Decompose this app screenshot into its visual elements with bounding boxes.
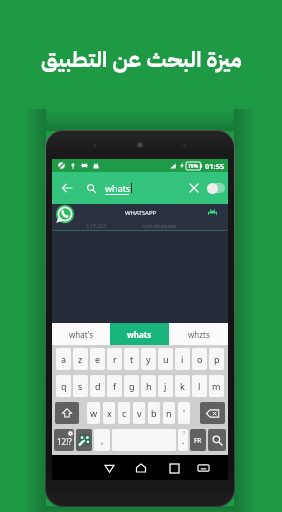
staticText: q <box>61 380 67 392</box>
staticText: 01:55 <box>205 161 225 171</box>
staticText: 79% <box>188 163 199 170</box>
staticText: . <box>182 434 185 446</box>
staticText: r <box>113 353 117 365</box>
staticText: a <box>61 353 67 365</box>
button[interactable]: h <box>141 375 156 397</box>
staticText: g <box>129 380 135 392</box>
button[interactable]: , <box>94 429 110 451</box>
staticText: f <box>113 380 117 392</box>
button[interactable]: what's <box>52 323 110 345</box>
button[interactable]: z <box>73 348 88 370</box>
button[interactable]: m <box>209 375 224 397</box>
button[interactable]: i <box>175 348 190 370</box>
button[interactable]: search <box>208 429 226 451</box>
staticText: WHATSAPP <box>125 209 157 217</box>
button[interactable]: w <box>87 402 100 424</box>
staticText: k <box>180 380 185 392</box>
button[interactable]: s <box>73 375 88 397</box>
staticText: m <box>212 380 221 392</box>
staticText: i <box>181 353 184 365</box>
button[interactable]: FR <box>190 429 206 451</box>
staticText: o <box>197 353 203 365</box>
button[interactable]: 12!? <box>54 429 74 451</box>
button[interactable]: o <box>192 348 207 370</box>
staticText: b <box>151 407 157 419</box>
staticText: whzts <box>188 329 210 340</box>
button[interactable]: g <box>124 375 139 397</box>
button[interactable]: n <box>163 402 175 424</box>
button[interactable]: whats <box>110 323 169 345</box>
staticText: ' <box>183 407 186 419</box>
staticText: y <box>146 353 151 365</box>
staticText: what's <box>69 329 94 340</box>
button[interactable]: Switch keyboard <box>193 458 213 478</box>
button[interactable]: b <box>148 402 160 424</box>
staticText: j <box>164 380 167 392</box>
staticText: 12!? <box>57 436 72 447</box>
staticText: v <box>137 407 142 419</box>
button[interactable]: Back <box>99 458 119 478</box>
staticText: e <box>95 353 101 365</box>
button[interactable]: whzts <box>169 323 228 345</box>
staticText: n <box>166 407 172 419</box>
staticText: p <box>214 353 220 365</box>
staticText: whats <box>127 329 152 340</box>
button[interactable]: k <box>175 375 190 397</box>
staticText: ? <box>183 430 186 437</box>
button[interactable]: p <box>209 348 224 370</box>
button[interactable]: Recents <box>164 458 184 478</box>
staticText: c <box>122 407 127 419</box>
button[interactable]: u <box>158 348 173 370</box>
staticText: w <box>90 407 98 419</box>
button[interactable]: c <box>118 402 130 424</box>
button[interactable]: ' <box>178 402 190 424</box>
button[interactable]: t <box>124 348 139 370</box>
button[interactable]: q <box>56 375 71 397</box>
button[interactable]: e <box>90 348 105 370</box>
staticText: z <box>78 353 83 365</box>
staticText: d <box>95 380 101 392</box>
button[interactable]: a <box>56 348 71 370</box>
staticText: u <box>163 353 169 365</box>
staticText: l <box>198 380 201 392</box>
button[interactable]: j <box>158 375 173 397</box>
button[interactable]: emoji <box>76 429 92 451</box>
staticText: whats <box>105 182 131 194</box>
button[interactable]: y <box>141 348 156 370</box>
button[interactable]: r <box>107 348 122 370</box>
staticText: t <box>130 353 134 365</box>
button[interactable]: WHATSAPP <box>52 204 228 231</box>
button[interactable]: d <box>90 375 105 397</box>
button[interactable]: Clear <box>184 178 204 198</box>
staticText: h <box>146 380 152 392</box>
button[interactable]: shift <box>55 402 79 424</box>
staticText: FR <box>194 436 202 445</box>
button[interactable]: del <box>200 402 225 424</box>
button[interactable]: v <box>133 402 145 424</box>
button[interactable]: Back <box>57 178 77 198</box>
button[interactable]: l <box>192 375 207 397</box>
staticText: x <box>107 407 112 419</box>
button[interactable]: . <box>178 429 188 451</box>
button[interactable]: Home <box>131 458 151 478</box>
staticText: com.whatsapp <box>142 223 177 230</box>
staticText: ميزة البحث عن التطبيق <box>41 43 242 76</box>
staticText: , <box>101 434 104 446</box>
button[interactable]: Toggle <box>205 178 225 198</box>
staticText: 2.17.223 <box>86 223 106 230</box>
staticText: s <box>78 380 83 392</box>
button[interactable]: x <box>103 402 115 424</box>
button[interactable]: f <box>107 375 122 397</box>
